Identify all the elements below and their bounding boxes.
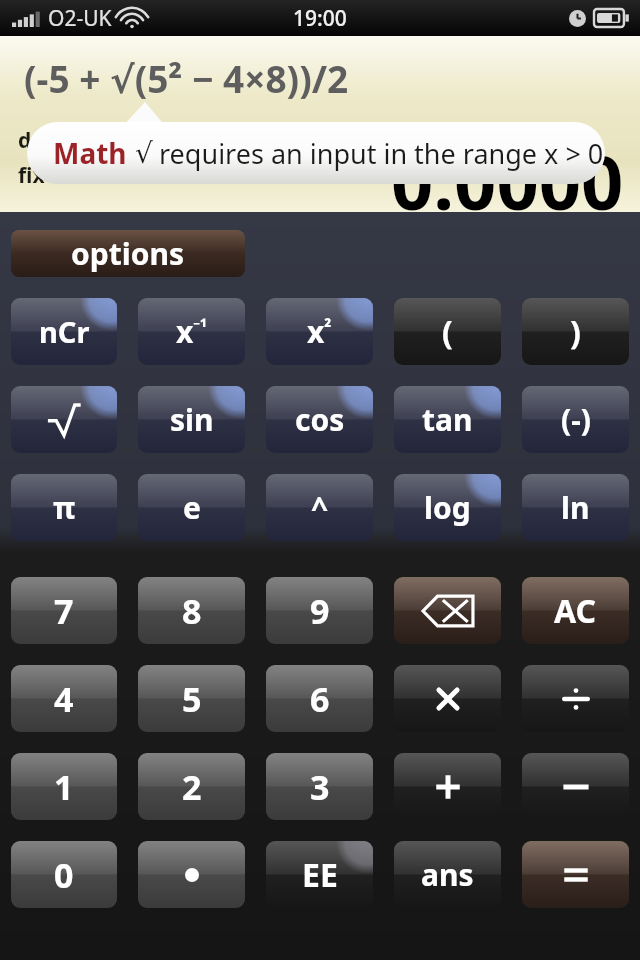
staticText: 5 (182, 676, 202, 722)
button[interactable]: 6 (266, 665, 373, 732)
button[interactable]: 8 (138, 577, 245, 644)
button[interactable]: x² (266, 298, 373, 365)
staticText: O2-UK (48, 4, 112, 33)
staticText: sin (170, 399, 214, 440)
button[interactable]: Equals (522, 841, 629, 908)
button[interactable]: Plus (394, 753, 501, 820)
staticText: deg (18, 126, 58, 155)
button[interactable]: sin (138, 386, 245, 453)
button[interactable]: log (394, 474, 501, 541)
staticText: requires an input in the range x > 0 (159, 135, 604, 172)
button[interactable]: 2 (138, 753, 245, 820)
staticText: 8 (182, 588, 202, 634)
staticText: 6 (310, 676, 330, 722)
staticText: Math (53, 134, 127, 172)
staticText: cos (295, 399, 345, 440)
button[interactable]: ans (394, 841, 501, 908)
staticText: 3 (310, 764, 330, 810)
button[interactable]: 9 (266, 577, 373, 644)
button[interactable]: options (11, 230, 245, 277)
button[interactable]: Minus (522, 753, 629, 820)
staticText: log (424, 487, 471, 528)
staticText: options (71, 233, 185, 274)
staticText: 0 (54, 852, 74, 898)
staticText: (-5 + √(5² − 4×8))/2 (24, 53, 349, 103)
button[interactable]: 3 (266, 753, 373, 820)
staticText: ln (561, 487, 590, 528)
button[interactable]: ( (394, 298, 501, 365)
staticText: nCr (39, 312, 90, 351)
button[interactable]: Decimal point (138, 841, 245, 908)
button[interactable]: e (138, 474, 245, 541)
staticText: 0.0000 (391, 131, 624, 212)
button[interactable]: ln (522, 474, 629, 541)
button[interactable]: AC (522, 577, 629, 644)
staticText: ^ (311, 487, 329, 528)
button[interactable]: cos (266, 386, 373, 453)
staticText: 19:00 (293, 4, 347, 33)
button[interactable]: EE (266, 841, 373, 908)
staticText: fix4 (18, 161, 57, 190)
staticText: ans (421, 854, 474, 895)
button[interactable]: Divide (522, 665, 629, 732)
button[interactable]: 7 (11, 577, 117, 644)
button[interactable]: Math (27, 122, 605, 184)
button[interactable]: Square root (11, 386, 117, 453)
staticText: tan (422, 399, 473, 440)
button[interactable]: 0 (11, 841, 117, 908)
staticText: 1 (54, 764, 74, 810)
button[interactable]: 5 (138, 665, 245, 732)
button[interactable]: Multiply (394, 665, 501, 732)
staticText: 7 (54, 588, 74, 634)
staticText: ( (442, 310, 453, 354)
staticText: (-) (561, 399, 591, 440)
button[interactable]: π (11, 474, 117, 541)
staticText: 9 (310, 588, 330, 634)
button[interactable]: (-) (522, 386, 629, 453)
button[interactable]: 1 (11, 753, 117, 820)
staticText: ) (570, 310, 581, 354)
button[interactable]: nCr (11, 298, 117, 365)
button[interactable]: ) (522, 298, 629, 365)
staticText: EE (302, 853, 338, 897)
button[interactable]: 4 (11, 665, 117, 732)
staticText: e (183, 487, 201, 528)
staticText: x⁻¹ (176, 311, 208, 352)
staticText: AC (554, 589, 597, 633)
staticText: 4 (54, 676, 74, 722)
button[interactable]: ^ (266, 474, 373, 541)
staticText: π (53, 487, 76, 528)
button[interactable]: x⁻¹ (138, 298, 245, 365)
staticText: 2 (182, 764, 202, 810)
button[interactable]: Backspace (394, 577, 501, 644)
button[interactable]: tan (394, 386, 501, 453)
staticText: x² (307, 311, 332, 352)
staticText: √ (135, 137, 153, 170)
